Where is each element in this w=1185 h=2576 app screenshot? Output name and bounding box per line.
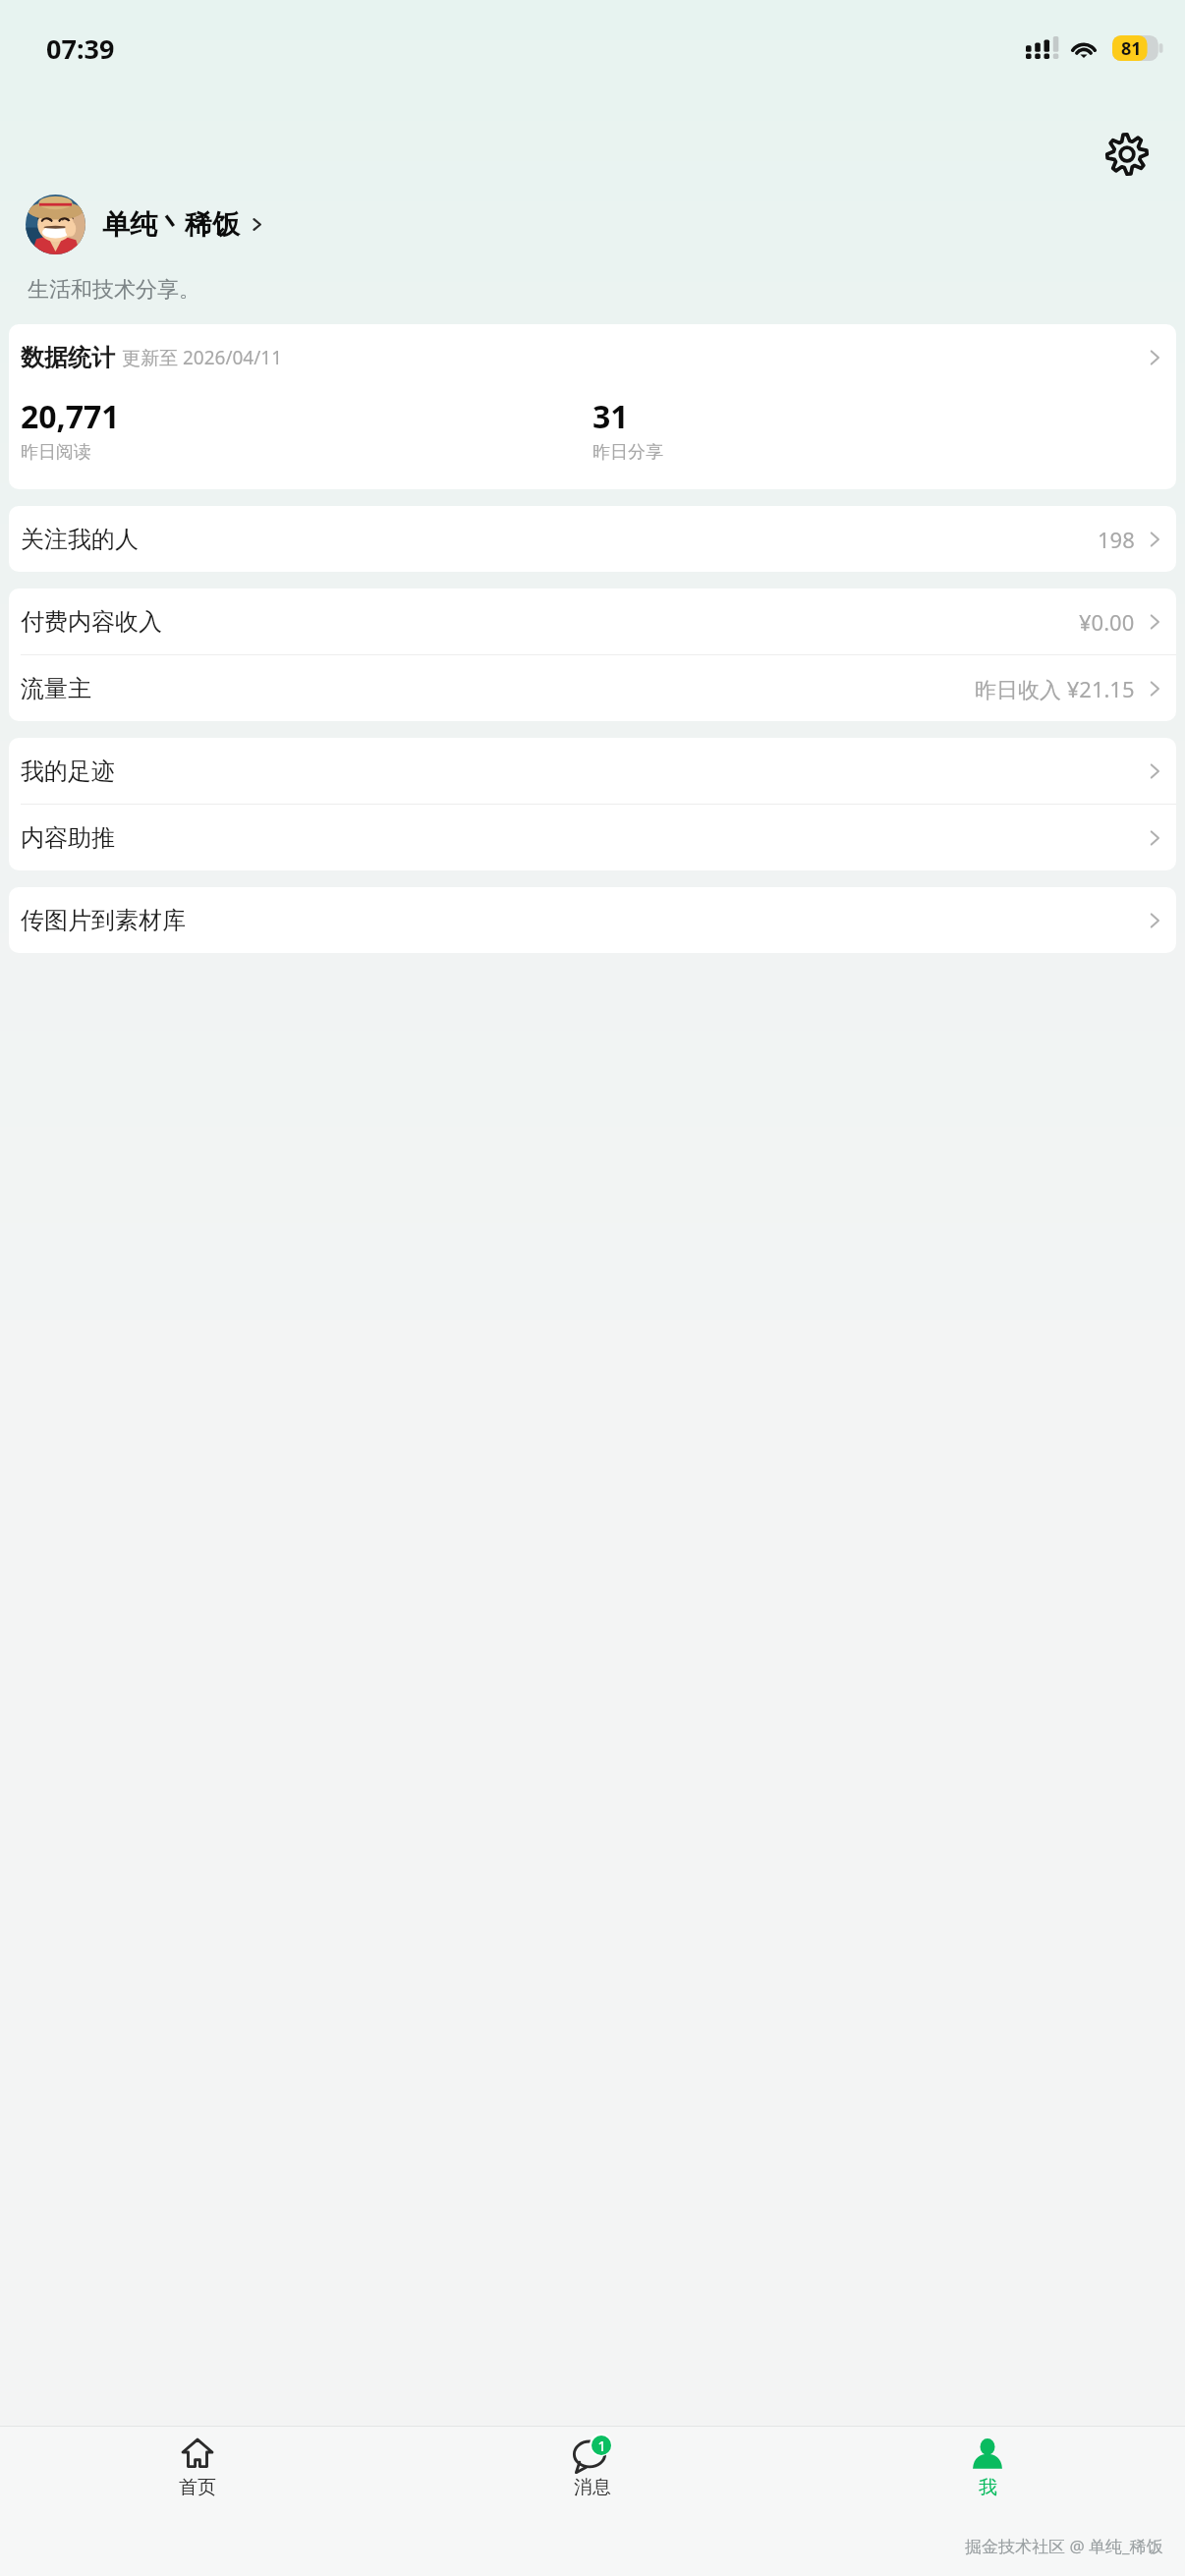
staticText: 81 bbox=[1121, 36, 1142, 61]
staticText: 数据统计 bbox=[21, 343, 115, 372]
staticText: 31 bbox=[592, 395, 629, 438]
staticText: 更新至 2026/04/11 bbox=[122, 345, 283, 370]
staticText: 付费内容收入 bbox=[21, 607, 162, 637]
staticText: 昨日分享 bbox=[592, 441, 663, 464]
button[interactable]: 内容助推 bbox=[9, 805, 1176, 870]
button[interactable]: 关注我的人 bbox=[9, 506, 1176, 572]
staticText: 单纯丶稀饭 bbox=[102, 207, 240, 242]
button[interactable]: 首页 bbox=[0, 2427, 395, 2515]
staticText: 掘金技术社区 @ 单纯_稀饭 bbox=[965, 2535, 1163, 2557]
staticText: 流量主 bbox=[21, 674, 91, 703]
staticText: 昨日阅读 bbox=[21, 441, 91, 464]
button[interactable]: Settings bbox=[1099, 126, 1156, 183]
staticText: 1 bbox=[597, 2436, 606, 2455]
button[interactable]: 流量主 bbox=[9, 655, 1176, 721]
staticText: 昨日收入 ¥21.15 bbox=[975, 674, 1135, 703]
button[interactable]: 传图片到素材库 bbox=[9, 887, 1176, 953]
button[interactable]: 1 bbox=[395, 2427, 790, 2515]
staticText: 生活和技术分享。 bbox=[28, 276, 200, 304]
staticText: 07:39 bbox=[46, 30, 115, 67]
staticText: 首页 bbox=[179, 2476, 216, 2499]
staticText: 传图片到素材库 bbox=[21, 906, 186, 935]
button[interactable]: 付费内容收入 bbox=[9, 588, 1176, 654]
staticText: 关注我的人 bbox=[21, 525, 139, 554]
staticText: ¥0.00 bbox=[1079, 607, 1135, 637]
button[interactable]: 数据统计 bbox=[9, 324, 1176, 489]
staticText: 内容助推 bbox=[21, 823, 115, 853]
staticText: 消息 bbox=[574, 2476, 611, 2499]
staticText: 我的足迹 bbox=[21, 756, 115, 786]
staticText: 我 bbox=[979, 2476, 997, 2499]
staticText: 20,771 bbox=[21, 395, 120, 438]
button[interactable]: 我的足迹 bbox=[9, 738, 1176, 804]
button[interactable]: 我 bbox=[790, 2427, 1185, 2515]
staticText: 198 bbox=[1098, 525, 1135, 554]
button[interactable]: 单纯丶稀饭 bbox=[26, 195, 1159, 254]
